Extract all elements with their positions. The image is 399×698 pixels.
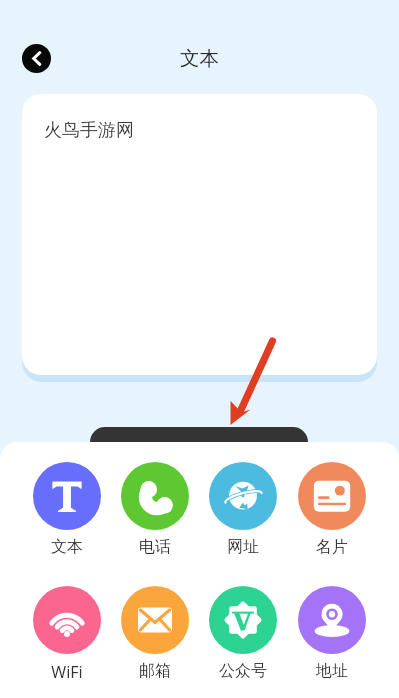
- staticText: 文本: [51, 537, 83, 557]
- staticText: 请选择分享的内容: [143, 454, 255, 471]
- staticText: 网址: [227, 537, 259, 557]
- button[interactable]: 电话: [111, 462, 199, 557]
- button[interactable]: 地址: [288, 586, 376, 681]
- staticText: 地址: [316, 661, 348, 681]
- staticText: 名片: [316, 537, 348, 557]
- button[interactable]: 名片: [288, 462, 376, 557]
- staticText: 公众号: [219, 661, 267, 681]
- button[interactable]: 邮箱: [111, 586, 199, 681]
- button[interactable]: 网址: [199, 462, 287, 557]
- button[interactable]: 公众号: [199, 586, 287, 681]
- staticText: 邮箱: [139, 661, 171, 681]
- staticText: 火鸟手游网: [44, 119, 134, 142]
- staticText: 电话: [139, 537, 171, 557]
- staticText: WiFi: [51, 661, 83, 683]
- staticText: 文本: [180, 46, 219, 71]
- button[interactable]: 文本: [23, 462, 111, 557]
- button[interactable]: Back: [22, 44, 51, 73]
- button[interactable]: WiFi: [23, 586, 111, 683]
